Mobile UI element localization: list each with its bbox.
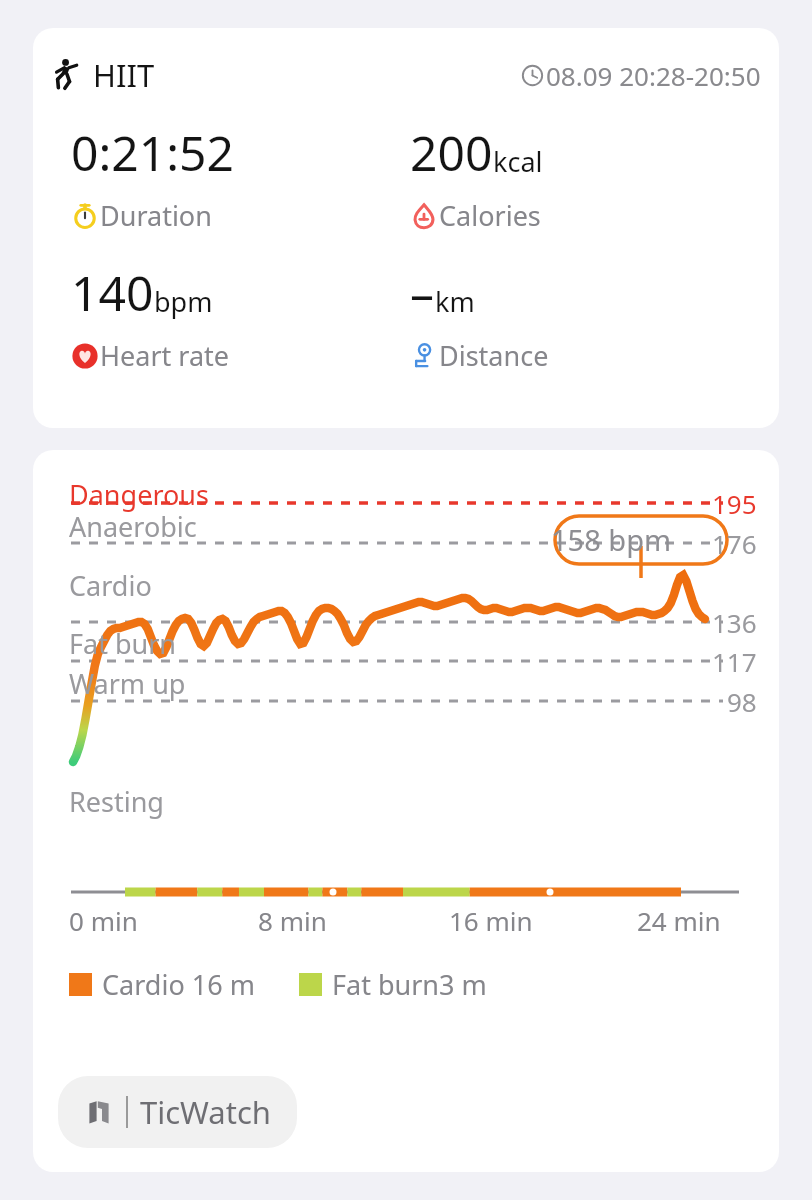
staticText: Warm up [69,665,186,702]
staticText: 98 [727,684,757,719]
staticText: 136 [712,605,757,640]
staticText: Cardio 16 m [102,966,255,1003]
button[interactable]: Workout type [33,28,779,428]
staticText: Heart rate [100,337,230,374]
staticText: 117 [712,644,757,679]
staticText: 0 min [69,903,138,938]
staticText: Distance [439,337,549,374]
other: Workout type [49,57,85,93]
staticText: Fat burn [69,625,177,662]
staticText: 195 [712,486,757,521]
staticText: 140 [71,260,154,325]
staticText: Dangerous [69,476,209,513]
staticText: 158 bpm [551,520,672,559]
staticText: – [410,260,435,325]
staticText: 08.09 20:28-20:50 [546,58,761,93]
staticText: 200 [410,120,493,185]
staticText: Resting [69,783,164,820]
staticText: 8 min [258,903,327,938]
staticText: Cardio [69,567,152,604]
staticText: bpm [154,283,213,320]
staticText: Fat burn3 m [332,966,487,1003]
staticText: km [435,283,475,320]
staticText: 16 min [449,903,533,938]
staticText: HIIT [93,54,155,96]
staticText: Duration [100,197,212,234]
staticText: Anaerobic [69,508,197,545]
staticText: Calories [439,197,541,234]
staticText: 176 [712,526,757,561]
staticText: 24 min [637,903,721,938]
staticText: 0:21:52 [71,120,235,185]
staticText: TicWatch [140,1091,271,1133]
staticText: kcal [493,143,543,180]
button[interactable]: TicWatch [58,1076,297,1148]
